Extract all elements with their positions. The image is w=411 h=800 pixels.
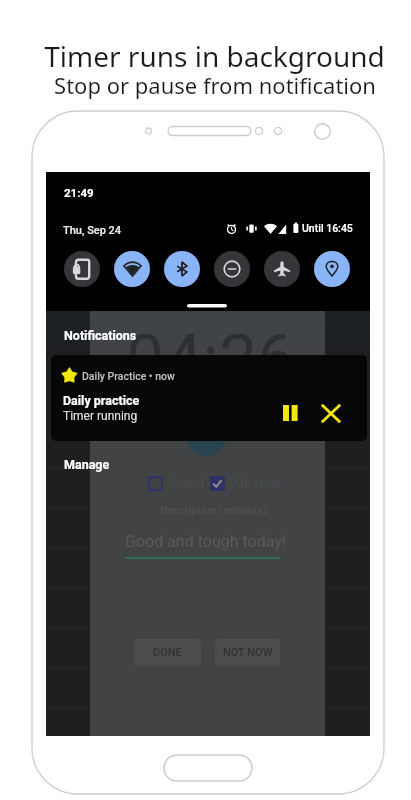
staticText: Timer running [63, 409, 138, 423]
button[interactable]: NOT NOW [215, 639, 280, 666]
button[interactable]: Wi-Fi [114, 251, 150, 287]
staticText: Manage [64, 457, 110, 472]
button[interactable]: Daily Practice • now [51, 355, 367, 441]
button[interactable]: Dismiss notification [312, 394, 350, 432]
staticText: Timer runs in background [44, 37, 385, 75]
button[interactable]: Do not disturb [214, 251, 250, 287]
staticText: 21:49 [64, 186, 94, 199]
staticText: Daily Practice • now [82, 370, 175, 382]
button[interactable]: Airplane mode [264, 251, 300, 287]
staticText: Notifications [64, 328, 137, 343]
staticText: 04:26 [126, 320, 296, 400]
button[interactable]: Pause timer [273, 396, 307, 430]
staticText: Stop or pause from notification [54, 70, 376, 100]
button[interactable]: Auto rotate [64, 251, 100, 287]
button[interactable]: Location [314, 251, 350, 287]
staticText: Description (editable): [160, 504, 270, 517]
staticText: Good and tough today! [125, 532, 286, 551]
staticText: Thu, Sep 24 [63, 224, 122, 237]
staticText: DONE [153, 646, 182, 659]
staticText: Daily practice [63, 393, 140, 408]
staticText: Until 16:45 [302, 222, 353, 234]
button[interactable]: Bluetooth [164, 251, 200, 287]
staticText: NOT NOW [223, 646, 273, 659]
button[interactable]: DONE [134, 639, 201, 666]
